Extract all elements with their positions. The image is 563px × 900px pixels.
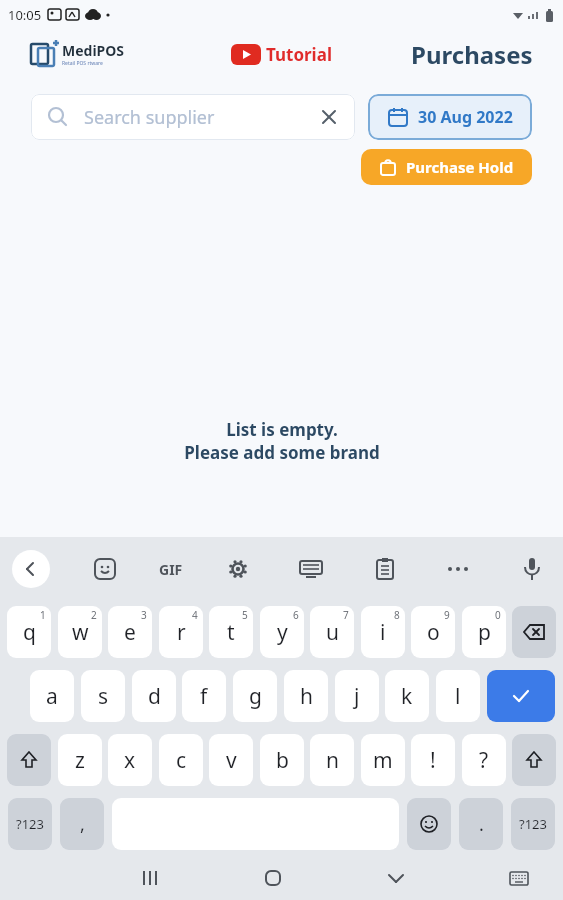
button[interactable] [292, 550, 330, 588]
staticText: List is empty. [226, 418, 338, 441]
staticText: ?123 [16, 815, 44, 833]
staticText: GIF [159, 560, 183, 579]
staticText: p [478, 618, 491, 647]
button[interactable]: b [260, 734, 304, 786]
button[interactable] [407, 798, 451, 850]
button[interactable] [513, 550, 551, 588]
button[interactable] [321, 109, 337, 125]
button[interactable] [439, 550, 477, 588]
button[interactable]: m [361, 734, 405, 786]
staticText: n [326, 746, 339, 775]
button[interactable]: q [7, 606, 51, 658]
staticText: m [373, 746, 393, 775]
button[interactable]: x [108, 734, 152, 786]
staticText: k [401, 682, 413, 711]
button[interactable]: p [462, 606, 506, 658]
button[interactable]: GIF [159, 550, 183, 588]
button[interactable] [86, 550, 124, 588]
staticText: ! [430, 746, 436, 775]
button[interactable]: w [58, 606, 102, 658]
button[interactable]: h [284, 670, 328, 722]
button[interactable]: i [361, 606, 405, 658]
staticText: ? [479, 746, 489, 775]
button[interactable] [512, 606, 556, 658]
button[interactable] [12, 550, 50, 588]
button[interactable] [130, 858, 170, 898]
staticText: h [300, 682, 313, 711]
staticText: Please add some brand [184, 441, 380, 464]
staticText: w [72, 618, 89, 647]
staticText: Purchase Hold [406, 157, 514, 177]
button[interactable]: s [81, 670, 125, 722]
button[interactable]: y [260, 606, 304, 658]
staticText: f [200, 682, 208, 711]
button[interactable]: e [108, 606, 152, 658]
staticText: 8 [394, 608, 400, 622]
staticText: u [326, 618, 339, 647]
button[interactable] [7, 734, 51, 786]
button[interactable] [487, 670, 555, 722]
staticText: 5 [242, 608, 248, 622]
staticText: l [455, 682, 461, 711]
button[interactable]: g [233, 670, 277, 722]
button[interactable]: c [159, 734, 203, 786]
button[interactable]: r [159, 606, 203, 658]
staticText: 30 Aug 2022 [418, 106, 513, 128]
staticText: q [23, 618, 36, 647]
staticText: Search supplier [84, 105, 321, 130]
staticText: 1 [40, 608, 46, 622]
staticText: b [276, 746, 289, 775]
staticText: x [124, 746, 136, 775]
staticText: 3 [141, 608, 147, 622]
staticText: . [479, 812, 484, 837]
button[interactable]: k [385, 670, 429, 722]
button[interactable]: z [58, 734, 102, 786]
button[interactable]: ? [462, 734, 506, 786]
button[interactable]: Purchase Hold [361, 149, 532, 185]
button[interactable]: Tutorial [231, 43, 332, 66]
staticText: a [46, 682, 58, 711]
staticText: y [277, 618, 288, 647]
staticText: 2 [91, 608, 97, 622]
button[interactable]: a [30, 670, 74, 722]
button[interactable]: ?123 [511, 798, 555, 850]
staticText: 7 [343, 608, 349, 622]
staticText: v [226, 746, 237, 775]
button[interactable] [512, 734, 556, 786]
button[interactable]: j [335, 670, 379, 722]
staticText: d [148, 682, 161, 711]
button[interactable]: o [411, 606, 455, 658]
button[interactable]: v [209, 734, 253, 786]
button[interactable] [219, 550, 257, 588]
staticText: Retail POS rtware [62, 60, 103, 67]
button[interactable] [499, 858, 539, 898]
button[interactable]: n [310, 734, 354, 786]
button[interactable] [376, 858, 416, 898]
staticText: 6 [293, 608, 299, 622]
staticText: r [177, 618, 186, 647]
button[interactable]: l [436, 670, 480, 722]
staticText: e [124, 618, 136, 647]
button[interactable] [366, 550, 404, 588]
button[interactable]: d [132, 670, 176, 722]
staticText: s [98, 682, 109, 711]
button[interactable]: . [459, 798, 503, 850]
staticText: 4 [192, 608, 198, 622]
button[interactable]: f [182, 670, 226, 722]
button[interactable]: ! [411, 734, 455, 786]
staticText: MediPOS [62, 41, 125, 60]
button[interactable]: Search supplier [31, 94, 355, 140]
staticText: t [227, 618, 235, 647]
button[interactable]: ?123 [8, 798, 52, 850]
staticText: Tutorial [266, 43, 332, 66]
staticText: z [75, 746, 85, 775]
staticText: Purchases [411, 38, 533, 71]
button[interactable]: 30 Aug 2022 [368, 94, 532, 140]
staticText: , [80, 812, 85, 837]
staticText: ?123 [519, 815, 547, 833]
button[interactable]: , [60, 798, 104, 850]
button[interactable]: t [209, 606, 253, 658]
button[interactable]: u [310, 606, 354, 658]
button[interactable] [253, 858, 293, 898]
